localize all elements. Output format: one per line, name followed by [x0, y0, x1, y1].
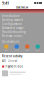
- staticText: Send: [25, 49, 29, 51]
- button[interactable]: Send: [22, 44, 32, 51]
- staticText: Payment due: [5, 65, 23, 68]
- button[interactable]: Scan: [11, 44, 22, 51]
- staticText: Release notes: [2, 34, 22, 38]
- staticText: All: [2, 59, 6, 63]
- staticText: Configuration: [2, 22, 22, 26]
- button[interactable]: More: [32, 44, 43, 51]
- staticText: More: [36, 49, 40, 51]
- staticText: Pay: [5, 49, 8, 51]
- staticText: Introduction: [2, 14, 20, 18]
- button[interactable]: Pay: [1, 44, 11, 51]
- staticText: Advanced usage: [2, 26, 24, 30]
- staticText: Recent activity: [2, 54, 22, 58]
- staticText: Overview: [16, 6, 28, 9]
- staticText: Troubleshooting: [2, 30, 26, 34]
- staticText: Getting started: [2, 18, 23, 22]
- staticText: Unread: [7, 59, 17, 63]
- staticText: 9:41: [2, 0, 9, 6]
- staticText: Quick actions: [2, 40, 19, 43]
- staticText: Scan: [15, 49, 19, 51]
